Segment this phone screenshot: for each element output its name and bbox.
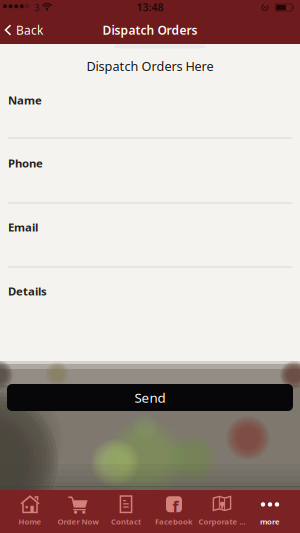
staticText: Send [134, 387, 165, 408]
button[interactable]: Send [7, 384, 293, 411]
button[interactable]: Contact [102, 490, 150, 533]
staticText: Details [8, 282, 47, 300]
button[interactable]: Order Now [54, 490, 102, 533]
staticText: Dispatch Orders [102, 20, 197, 40]
staticText: Email [8, 218, 38, 236]
staticText: Phone [8, 154, 43, 172]
button[interactable]: Back [4, 17, 43, 43]
staticText: Corporate ... [198, 515, 245, 528]
staticText: Contact [111, 515, 141, 528]
staticText: Dispatch Orders Here [86, 56, 213, 76]
staticText: more [260, 515, 280, 528]
button[interactable]: Home [6, 490, 54, 533]
staticText: 3 [34, 1, 39, 15]
staticText: Order Now [57, 515, 98, 528]
button[interactable]: more [246, 490, 294, 533]
staticText: 13:48 [136, 0, 163, 16]
button[interactable]: Corporate ... [198, 490, 246, 533]
staticText: Facebook [155, 515, 193, 528]
staticText: Back [16, 20, 43, 40]
staticText: f [172, 494, 178, 519]
staticText: Home [18, 515, 41, 528]
button[interactable]: f [150, 490, 198, 533]
staticText: Name [8, 91, 42, 109]
